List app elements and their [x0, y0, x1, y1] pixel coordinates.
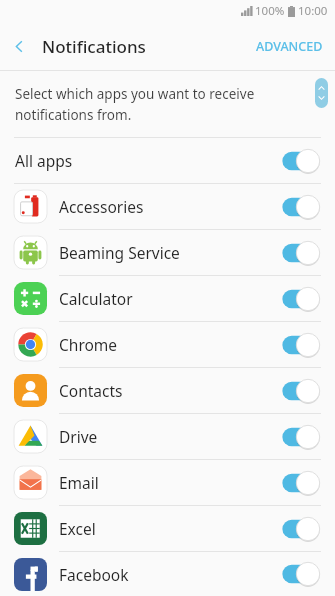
- staticText: 10:00: [298, 3, 328, 19]
- button[interactable]: Facebook: [0, 552, 335, 596]
- staticText: Contacts: [59, 380, 278, 401]
- button[interactable]: Toggle notifications: [278, 561, 322, 587]
- staticText: Excel: [59, 518, 278, 539]
- staticText: Select which apps you want to receive no…: [15, 85, 255, 124]
- button[interactable]: Toggle notifications: [278, 516, 322, 542]
- staticText: ADVANCED: [256, 38, 323, 55]
- staticText: Facebook: [59, 564, 278, 585]
- button[interactable]: Calculator: [0, 276, 335, 321]
- button[interactable]: Toggle notifications: [278, 148, 322, 174]
- button[interactable]: Toggle notifications: [278, 424, 322, 450]
- staticText: Drive: [59, 426, 278, 447]
- staticText: Calculator: [59, 288, 278, 309]
- button[interactable]: Accessories: [0, 184, 335, 229]
- button[interactable]: Back: [0, 27, 38, 65]
- button[interactable]: Toggle notifications: [278, 194, 322, 220]
- button[interactable]: Toggle notifications: [278, 378, 322, 404]
- staticText: Beaming Service: [59, 242, 278, 263]
- button[interactable]: Chrome: [0, 322, 335, 367]
- button[interactable]: Toggle notifications: [278, 470, 322, 496]
- button[interactable]: Toggle notifications: [278, 286, 322, 312]
- staticText: Chrome: [59, 334, 278, 355]
- button[interactable]: Beaming Service: [0, 230, 335, 275]
- button[interactable]: ADVANCED: [244, 28, 335, 65]
- button[interactable]: Contacts: [0, 368, 335, 413]
- staticText: 100%: [255, 3, 285, 19]
- staticText: Email: [59, 472, 278, 493]
- staticText: Accessories: [59, 196, 278, 217]
- button[interactable]: Email: [0, 460, 335, 505]
- staticText: Notifications: [42, 35, 146, 58]
- button[interactable]: Drive: [0, 414, 335, 459]
- button[interactable]: Excel: [0, 506, 335, 551]
- staticText: All apps: [15, 150, 278, 171]
- button[interactable]: Toggle notifications: [278, 332, 322, 358]
- button[interactable]: Toggle notifications: [278, 240, 322, 266]
- button[interactable]: All apps: [0, 138, 335, 183]
